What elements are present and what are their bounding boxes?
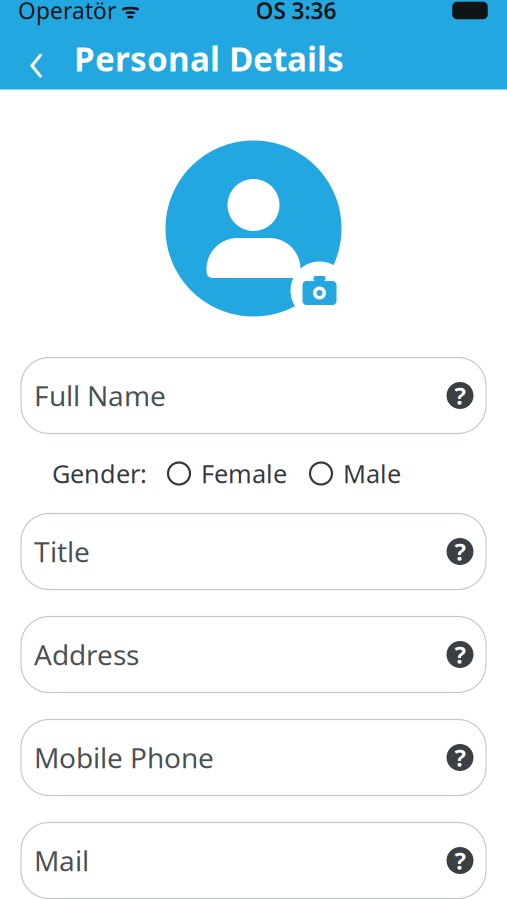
staticText: Mobile Phone [34, 739, 214, 776]
staticText: ? [454, 742, 465, 773]
button[interactable]: Mail [21, 822, 486, 898]
staticText: ? [454, 536, 465, 567]
staticText: Female [201, 457, 287, 490]
staticText: Male [343, 457, 401, 490]
button[interactable]: Title [21, 513, 486, 589]
button[interactable]: Change profile photo [158, 137, 348, 319]
button[interactable]: Mobile Phone [21, 719, 486, 795]
staticText: Gender: [52, 457, 147, 490]
staticText: ÖS 3:36 [255, 0, 336, 25]
staticText: ? [454, 845, 465, 876]
button[interactable]: Help [440, 531, 480, 571]
staticText: Full Name [34, 377, 166, 414]
staticText: Mail [34, 842, 89, 879]
button[interactable]: Back [10, 29, 62, 87]
button[interactable]: Male [310, 457, 401, 490]
button[interactable]: Full Name [21, 357, 486, 433]
staticText: Personal Details [74, 36, 344, 81]
staticText: ‹ [28, 18, 44, 99]
staticText: ᯤ [116, 0, 139, 24]
staticText: Operatör [18, 0, 116, 25]
button[interactable]: Help [440, 375, 480, 415]
button[interactable]: Help [440, 634, 480, 674]
staticText: ? [454, 639, 465, 670]
button[interactable]: Help [440, 840, 480, 880]
staticText: Address [34, 636, 139, 673]
button[interactable]: Female [168, 457, 287, 490]
button[interactable]: Address [21, 616, 486, 692]
staticText: Title [34, 533, 90, 570]
button[interactable]: Help [440, 737, 480, 777]
staticText: ? [454, 380, 465, 411]
